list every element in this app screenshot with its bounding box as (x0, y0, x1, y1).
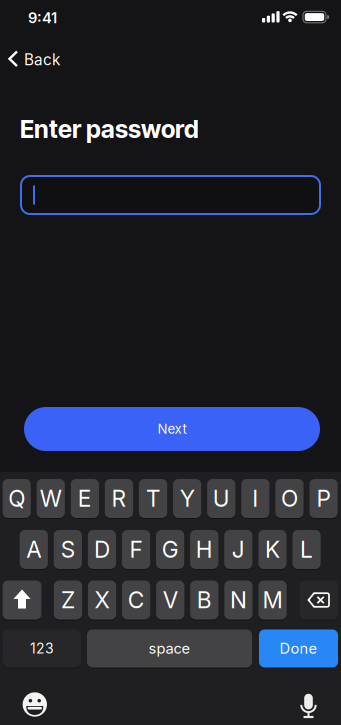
button[interactable]: space (87, 629, 252, 668)
staticText: Y (180, 485, 195, 512)
button[interactable]: Y (173, 479, 201, 519)
button[interactable]: N (224, 580, 253, 620)
staticText: A (26, 536, 41, 563)
button[interactable] (2, 580, 41, 620)
button[interactable]: Back (6, 43, 72, 74)
button[interactable]: Done (259, 629, 338, 668)
button[interactable]: Q (2, 479, 31, 519)
staticText: C (128, 586, 145, 614)
staticText: Back (24, 50, 60, 69)
button[interactable]: F (122, 530, 150, 570)
staticText: Done (279, 640, 317, 657)
staticText: R (111, 485, 126, 512)
staticText: Next (157, 421, 186, 437)
staticText: T (146, 485, 160, 512)
button[interactable]: G (156, 530, 184, 570)
button[interactable]: T (139, 479, 167, 519)
button[interactable] (13, 682, 57, 725)
staticText: H (196, 536, 213, 563)
staticText: D (94, 536, 110, 563)
staticText: K (265, 536, 280, 563)
button[interactable] (286, 684, 330, 725)
staticText: space (148, 640, 190, 657)
staticText: Enter password (20, 114, 199, 144)
button[interactable]: S (54, 530, 82, 570)
button[interactable]: J (224, 530, 252, 570)
staticText: S (61, 536, 75, 563)
button[interactable]: H (190, 530, 218, 570)
button[interactable]: O (275, 479, 304, 519)
staticText: M (263, 586, 283, 614)
staticText: X (95, 586, 110, 614)
button[interactable]: Next (24, 407, 320, 451)
staticText: 123 (30, 640, 54, 657)
button[interactable]: K (258, 530, 287, 570)
staticText: L (300, 536, 313, 563)
button[interactable]: Z (54, 580, 82, 620)
button[interactable]: L (292, 530, 321, 570)
button[interactable]: I (241, 479, 269, 519)
staticText: Z (61, 586, 75, 614)
button[interactable]: V (156, 580, 184, 620)
staticText: B (197, 586, 212, 614)
button[interactable]: B (190, 580, 218, 620)
staticText: I (252, 485, 258, 512)
button[interactable]: U (207, 479, 235, 519)
staticText: P (317, 485, 331, 512)
staticText: 9:41 (28, 9, 57, 27)
button[interactable]: 123 (3, 629, 81, 668)
staticText: F (130, 536, 143, 563)
staticText: W (40, 485, 62, 512)
staticText: J (232, 536, 245, 563)
staticText: U (213, 485, 230, 512)
staticText: E (78, 485, 92, 512)
button[interactable]: W (37, 479, 65, 519)
staticText: V (163, 586, 178, 614)
button[interactable]: M (258, 580, 287, 620)
button[interactable]: D (88, 530, 116, 570)
staticText: N (230, 586, 247, 614)
staticText: Q (8, 485, 25, 512)
staticText: O (281, 485, 298, 512)
button[interactable]: E (71, 479, 99, 519)
button[interactable]: P (309, 479, 338, 519)
button[interactable]: X (88, 580, 116, 620)
button[interactable]: R (105, 479, 133, 519)
button[interactable]: C (122, 580, 150, 620)
button[interactable] (299, 580, 338, 620)
button[interactable]: A (20, 530, 48, 570)
staticText: G (162, 536, 179, 563)
